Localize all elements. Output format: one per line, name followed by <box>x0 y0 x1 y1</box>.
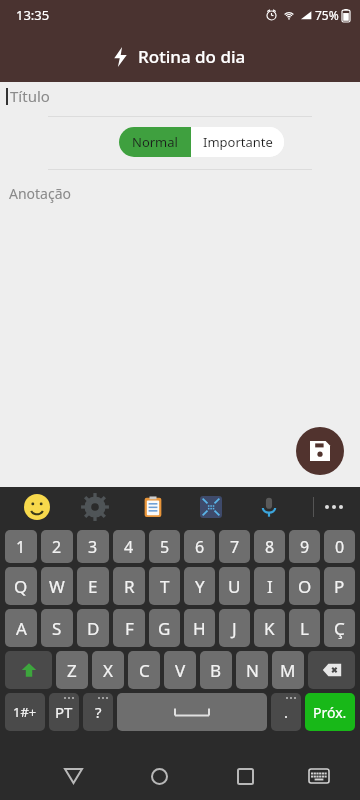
button[interactable]: 9 <box>289 530 320 563</box>
button[interactable]: Próx. <box>305 693 355 731</box>
button[interactable]: 8 <box>254 530 285 563</box>
button[interactable]: . <box>271 693 301 731</box>
staticText: 0 <box>335 536 345 558</box>
button[interactable]: L <box>289 609 320 647</box>
button[interactable]: 3 <box>77 530 109 563</box>
button[interactable]: E <box>77 567 109 605</box>
staticText: M <box>280 659 296 682</box>
staticText: K <box>264 617 275 640</box>
staticText: A <box>16 617 27 640</box>
staticText: Título <box>10 86 50 106</box>
staticText: Rotina do dia <box>138 45 246 68</box>
button[interactable]: P <box>324 567 355 605</box>
button[interactable]: V <box>164 651 196 689</box>
button[interactable]: T <box>149 567 180 605</box>
button[interactable]: Z <box>56 651 88 689</box>
staticText: 3 <box>88 536 98 558</box>
staticText: 5 <box>160 536 170 558</box>
staticText: P <box>334 575 345 598</box>
button[interactable]: B <box>200 651 232 689</box>
staticText: 9 <box>300 536 310 558</box>
button[interactable]: Entrada por voz <box>252 490 286 524</box>
button[interactable]: 4 <box>113 530 145 563</box>
button[interactable]: 1 <box>5 530 37 563</box>
staticText: Q <box>14 575 28 598</box>
staticText: Importante <box>203 133 273 151</box>
button[interactable]: U <box>219 567 250 605</box>
button[interactable]: ? <box>83 693 113 731</box>
staticText: 1 <box>16 536 26 558</box>
button[interactable]: J <box>219 609 250 647</box>
staticText: 2 <box>52 536 62 558</box>
button[interactable]: C <box>128 651 160 689</box>
button[interactable]: Q <box>5 567 37 605</box>
staticText: L <box>300 617 309 640</box>
staticText: D <box>87 617 100 640</box>
staticText: J <box>232 617 237 640</box>
button[interactable]: Espaço <box>117 693 267 731</box>
button[interactable]: A <box>5 609 37 647</box>
staticText: H <box>193 617 206 640</box>
button[interactable]: Área de transferência <box>136 490 170 524</box>
staticText: U <box>228 575 241 598</box>
button[interactable]: Normal <box>119 127 191 157</box>
staticText: 8 <box>265 536 275 558</box>
button[interactable]: W <box>41 567 73 605</box>
staticText: I <box>267 575 273 598</box>
button[interactable]: Backspace <box>308 651 355 689</box>
button[interactable]: 5 <box>149 530 180 563</box>
staticText: PT <box>55 702 73 722</box>
button[interactable]: Voltar <box>53 756 93 796</box>
staticText: E <box>88 575 98 598</box>
staticText: 13:35 <box>16 6 50 24</box>
button[interactable]: Redimensionar teclado <box>194 490 228 524</box>
button[interactable]: Emoji <box>20 490 54 524</box>
staticText: Anotação <box>9 184 72 203</box>
button[interactable]: D <box>77 609 109 647</box>
staticText: Normal <box>132 133 178 151</box>
staticText: ? <box>95 702 102 722</box>
button[interactable]: 6 <box>184 530 215 563</box>
button[interactable]: S <box>41 609 73 647</box>
staticText: Ç <box>334 617 345 640</box>
staticText: F <box>125 617 134 640</box>
staticText: 75% <box>315 7 339 23</box>
staticText: 4 <box>124 536 134 558</box>
button[interactable]: G <box>149 609 180 647</box>
button[interactable]: 7 <box>219 530 250 563</box>
button[interactable]: PT <box>49 693 79 731</box>
staticText: R <box>124 575 135 598</box>
staticText: 7 <box>230 536 240 558</box>
button[interactable]: F <box>113 609 145 647</box>
button[interactable]: 0 <box>324 530 355 563</box>
button[interactable]: Salvar <box>296 427 344 475</box>
button[interactable]: Teclado <box>299 756 339 796</box>
button[interactable]: X <box>92 651 124 689</box>
button[interactable]: N <box>236 651 268 689</box>
staticText: Z <box>67 659 77 682</box>
staticText: W <box>49 575 65 598</box>
button[interactable]: M <box>272 651 304 689</box>
staticText: O <box>298 575 312 598</box>
button[interactable]: Configurações <box>78 490 112 524</box>
button[interactable]: 2 <box>41 530 73 563</box>
staticText: V <box>175 659 186 682</box>
button[interactable]: Início <box>139 756 179 796</box>
button[interactable]: H <box>184 609 215 647</box>
button[interactable]: Y <box>184 567 215 605</box>
staticText: . <box>284 702 289 722</box>
button[interactable]: Importante <box>191 127 284 157</box>
button[interactable]: Ç <box>324 609 355 647</box>
button[interactable]: 1#+ <box>5 693 45 731</box>
button[interactable]: O <box>289 567 320 605</box>
button[interactable]: R <box>113 567 145 605</box>
button[interactable]: Mais opções <box>314 487 354 527</box>
staticText: Próx. <box>313 703 347 722</box>
button[interactable]: K <box>254 609 285 647</box>
button[interactable]: Recentes <box>225 756 265 796</box>
button[interactable]: Título <box>0 82 360 110</box>
staticText: B <box>210 659 222 682</box>
button[interactable]: I <box>254 567 285 605</box>
staticText: G <box>158 617 171 640</box>
button[interactable]: Shift <box>5 651 52 689</box>
